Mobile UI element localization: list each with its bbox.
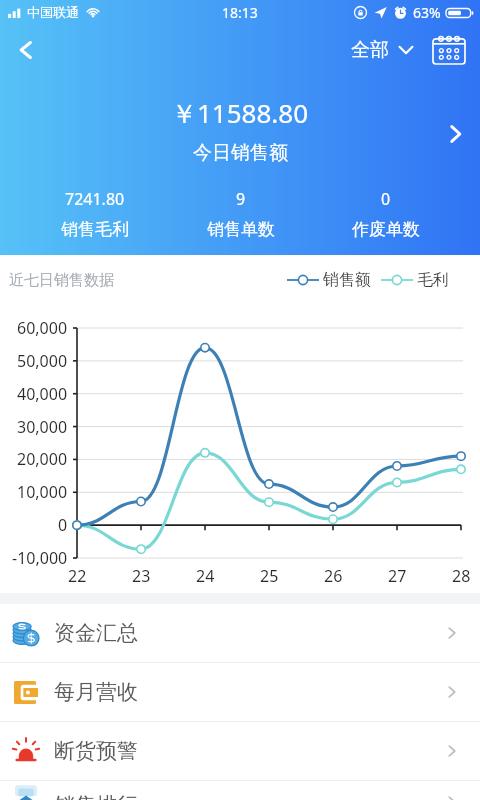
staticText: 销售排行: [54, 792, 138, 800]
staticText: 销售单数: [207, 219, 275, 240]
staticText: 63%: [413, 3, 441, 22]
staticText: 22: [68, 565, 87, 587]
staticText: 9: [236, 188, 246, 210]
staticText: 资金汇总: [54, 620, 138, 646]
button[interactable]: View details: [433, 112, 477, 156]
staticText: 18:13: [222, 3, 258, 22]
staticText: 断货预警: [54, 738, 138, 764]
staticText: 销售额: [323, 270, 371, 290]
button[interactable]: 全部: [347, 30, 417, 70]
button[interactable]: 资金汇总: [0, 604, 480, 662]
staticText: 销售毛利: [61, 219, 129, 240]
button[interactable]: 销售排行: [0, 784, 480, 800]
staticText: 40,000: [17, 383, 68, 405]
staticText: 23: [132, 565, 151, 587]
staticText: 今日销售额: [193, 141, 288, 165]
staticText: 28: [452, 565, 471, 587]
staticText: 26: [324, 565, 343, 587]
staticText: 作废单数: [352, 219, 420, 240]
staticText: 每月营收: [54, 679, 138, 705]
staticText: 24: [196, 565, 215, 587]
staticText: 毛利: [417, 270, 449, 290]
staticText: 近七日销售数据: [9, 271, 114, 290]
staticText: 20,000: [17, 448, 68, 470]
staticText: 10,000: [17, 481, 68, 503]
staticText: 中国联通: [27, 4, 79, 20]
button[interactable]: 销售额: [287, 270, 371, 290]
button[interactable]: 断货预警: [0, 722, 480, 780]
button[interactable]: 9: [168, 188, 313, 240]
button[interactable]: 每月营收: [0, 663, 480, 721]
staticText: 27: [388, 565, 407, 587]
staticText: -10,000: [12, 547, 68, 569]
staticText: 0: [381, 188, 391, 210]
staticText: 7241.80: [65, 188, 125, 210]
staticText: 全部: [351, 38, 389, 62]
button[interactable]: 7241.80: [22, 188, 168, 240]
button[interactable]: Calendar: [429, 30, 469, 70]
staticText: 30,000: [17, 416, 68, 438]
staticText: 25: [260, 565, 279, 587]
staticText: ￥11588.80: [171, 95, 309, 131]
button[interactable]: 毛利: [381, 270, 449, 290]
staticText: 0: [58, 514, 68, 536]
staticText: 50,000: [17, 350, 68, 372]
staticText: 60,000: [17, 317, 68, 339]
button[interactable]: Back: [0, 24, 52, 76]
button[interactable]: 0: [313, 188, 458, 240]
